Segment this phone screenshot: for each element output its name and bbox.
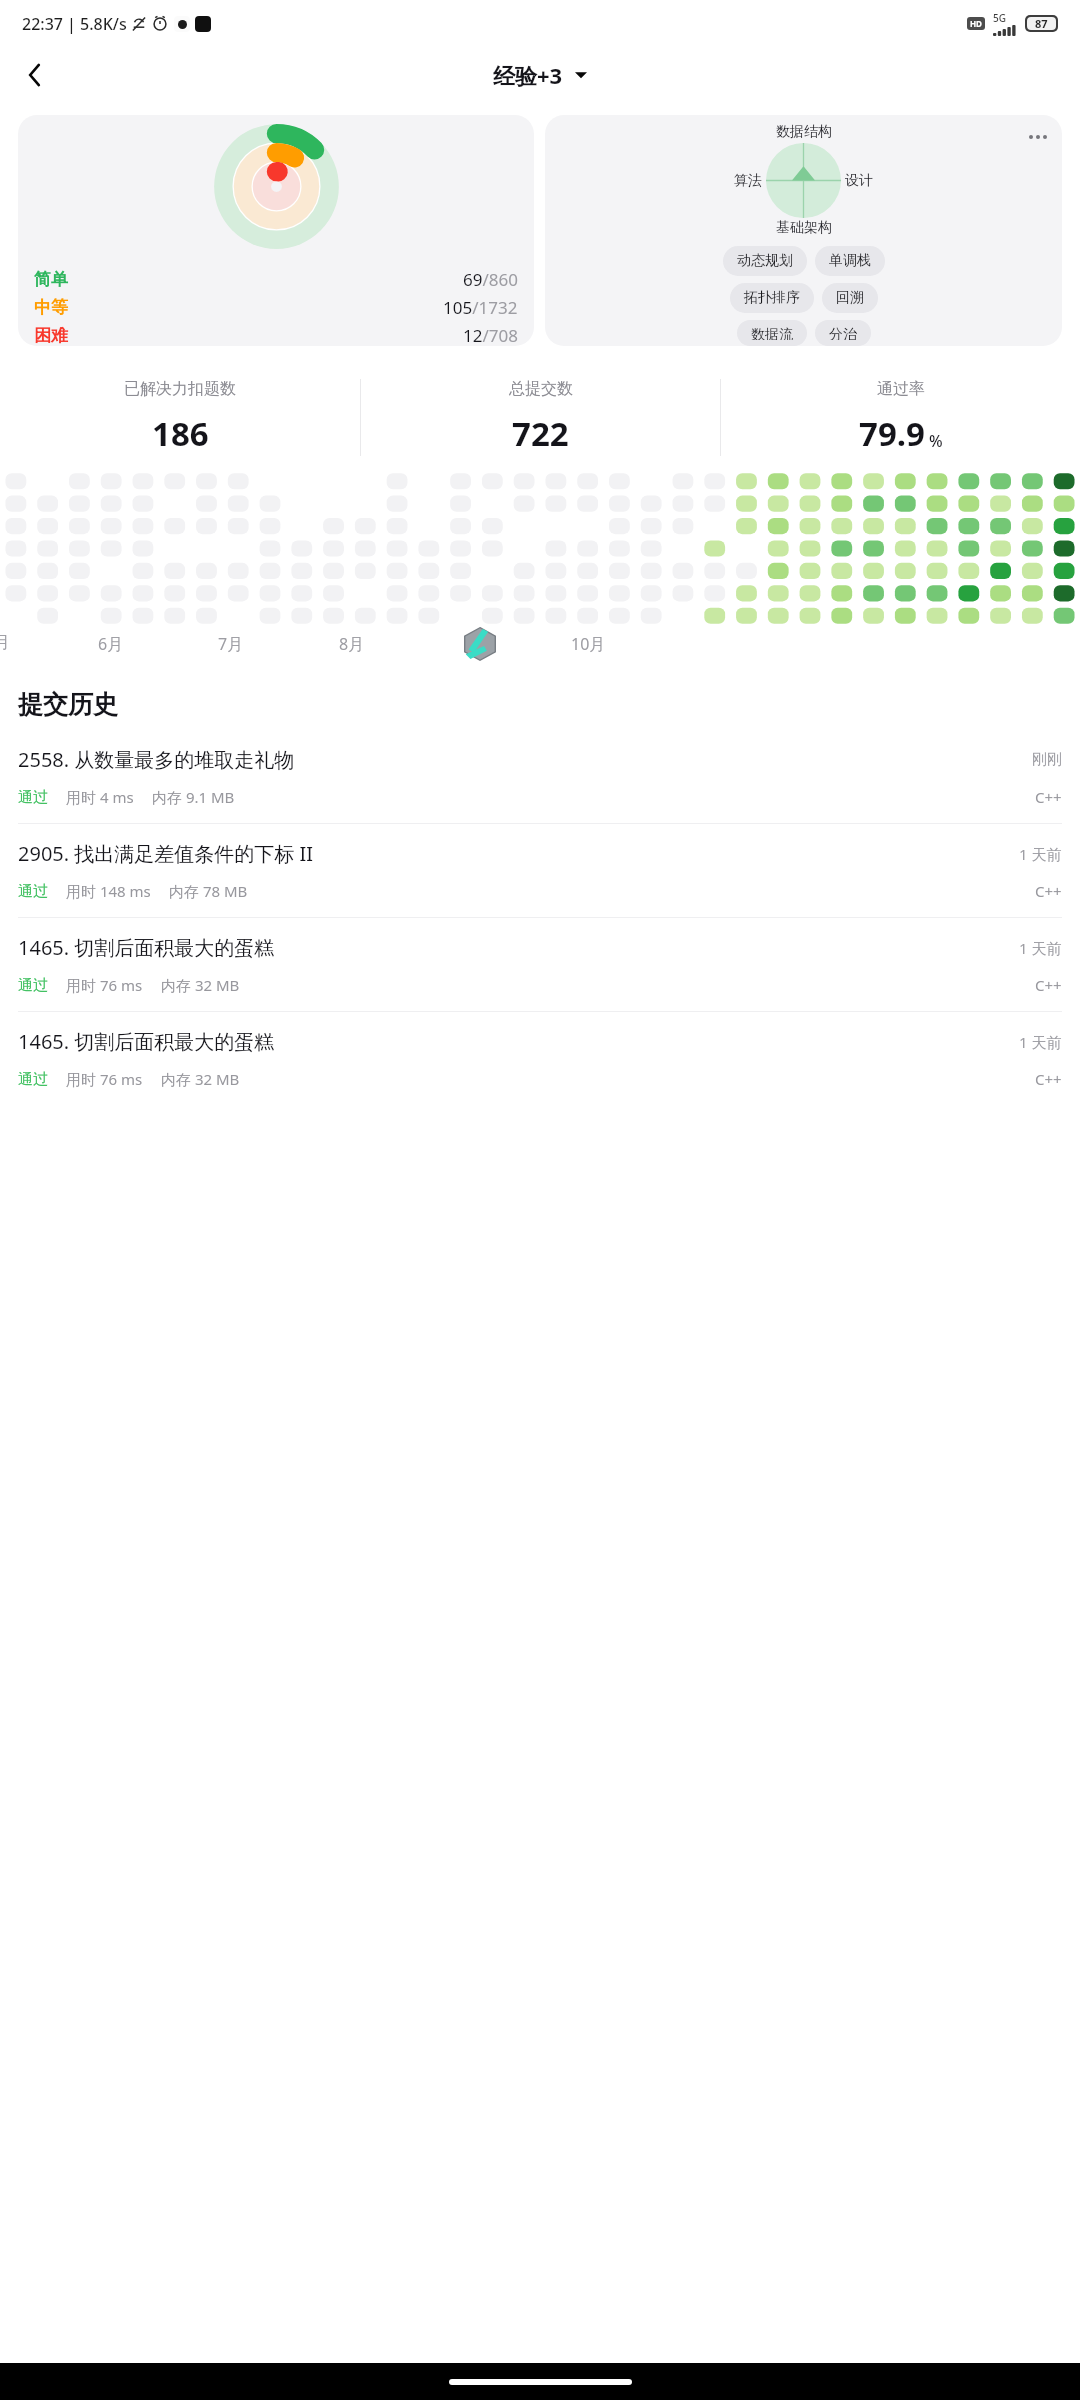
button[interactable]: 2558. 从数量最多的堆取走礼物	[0, 730, 1080, 823]
staticText: 8月	[339, 633, 365, 655]
staticText: %	[929, 430, 943, 452]
staticText: 用时 76 ms	[66, 1069, 143, 1089]
staticText: 内存 32 MB	[161, 1069, 240, 1089]
button[interactable]: 动态规划	[723, 246, 807, 276]
staticText: 数据流	[751, 326, 793, 340]
staticText: 数据结构	[776, 123, 832, 141]
staticText: 722	[512, 411, 569, 456]
staticText: 通过	[18, 1070, 48, 1089]
staticText: 69/860	[463, 268, 518, 291]
staticText: 内存 32 MB	[161, 975, 240, 995]
staticText: 通过	[18, 882, 48, 901]
button[interactable]: 数据流	[737, 320, 807, 346]
button[interactable]: More options	[1024, 123, 1052, 151]
button[interactable]: 回溯	[822, 283, 878, 313]
staticText: 用时 148 ms	[66, 881, 151, 901]
staticText: 刚刚	[1032, 750, 1062, 769]
button[interactable]: 分治	[815, 320, 871, 346]
staticText: 79.9	[859, 411, 925, 456]
button[interactable]: Back	[12, 52, 58, 98]
staticText: 用时 76 ms	[66, 975, 143, 995]
button[interactable]: 单调栈	[815, 246, 885, 276]
staticText: 动态规划	[737, 252, 793, 270]
staticText: 提交历史	[18, 689, 118, 720]
staticText: 5G	[993, 11, 1006, 25]
button[interactable]: 通过率	[721, 365, 1080, 470]
button[interactable]: 经验+3	[487, 54, 593, 96]
staticText: 2905. 找出满足差值条件的下标 II	[18, 840, 314, 867]
staticText: 内存 78 MB	[169, 881, 248, 901]
staticText: 单调栈	[829, 252, 871, 270]
staticText: 设计	[845, 172, 873, 190]
staticText: 基础架构	[776, 219, 832, 237]
button[interactable]: 总提交数	[361, 365, 720, 470]
staticText: 7月	[218, 633, 244, 655]
button[interactable]: 拓扑排序	[730, 283, 814, 313]
staticText: 1 天前	[1019, 938, 1062, 958]
staticText: 22:37 | 5.8K/s	[22, 13, 127, 35]
staticText: 通过	[18, 788, 48, 807]
button[interactable]: 1465. 切割后面积最大的蛋糕	[0, 918, 1080, 1011]
staticText: 回溯	[836, 289, 864, 307]
staticText: 通过率	[877, 379, 925, 399]
staticText: 87	[1035, 16, 1048, 31]
button[interactable]: 2905. 找出满足差值条件的下标 II	[0, 824, 1080, 917]
staticText: 105/1732	[443, 296, 518, 319]
staticText: 1 天前	[1019, 1032, 1062, 1052]
staticText: 186	[152, 411, 209, 456]
staticText: 用时 4 ms	[66, 787, 134, 807]
staticText: 月	[0, 633, 10, 653]
staticText: C++	[1035, 881, 1062, 901]
staticText: 1465. 切割后面积最大的蛋糕	[18, 1028, 275, 1055]
staticText: HD	[970, 18, 982, 29]
staticText: C++	[1035, 787, 1062, 807]
staticText: 已解决力扣题数	[124, 379, 236, 399]
staticText: 经验+3	[493, 60, 563, 90]
staticText: C++	[1035, 975, 1062, 995]
staticText: 分治	[829, 326, 857, 340]
staticText: 简单	[34, 269, 68, 290]
button[interactable]: 已解决力扣题数	[0, 365, 360, 470]
staticText: 总提交数	[509, 379, 573, 399]
staticText: 困难	[34, 325, 68, 346]
staticText: 1 天前	[1019, 844, 1062, 864]
staticText: 10月	[571, 633, 606, 655]
staticText: 1465. 切割后面积最大的蛋糕	[18, 934, 275, 961]
button[interactable]: 1465. 切割后面积最大的蛋糕	[0, 1012, 1080, 1105]
staticText: 内存 9.1 MB	[152, 787, 235, 807]
button[interactable]: 简单	[18, 115, 534, 346]
staticText: C++	[1035, 1069, 1062, 1089]
staticText: 6月	[98, 633, 124, 655]
staticText: 算法	[734, 172, 762, 190]
staticText: 12/708	[463, 324, 518, 346]
staticText: 2558. 从数量最多的堆取走礼物	[18, 746, 295, 773]
staticText: 通过	[18, 976, 48, 995]
staticText: 中等	[34, 297, 68, 318]
staticText: 拓扑排序	[744, 289, 800, 307]
button[interactable]: More options	[545, 115, 1062, 346]
